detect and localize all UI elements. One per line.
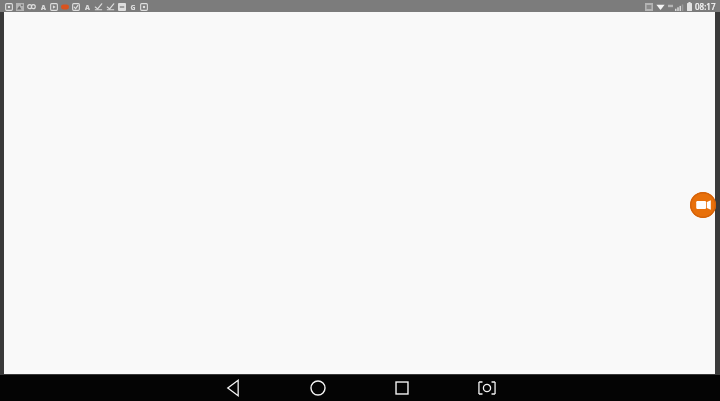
staticText: G — [130, 3, 136, 11]
button[interactable]: Back — [221, 375, 247, 401]
staticText: 08:17 — [695, 1, 716, 12]
staticText: A — [85, 3, 90, 11]
button[interactable]: Screenshot — [474, 375, 500, 401]
button[interactable]: Recent apps — [389, 375, 415, 401]
button[interactable]: Start video call — [690, 192, 716, 218]
button[interactable]: Home — [305, 375, 331, 401]
staticText: A — [41, 3, 46, 11]
